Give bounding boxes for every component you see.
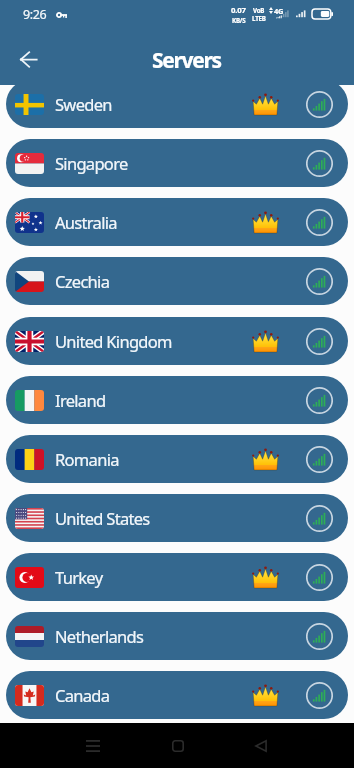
button[interactable]: Australia <box>6 198 348 246</box>
staticText: VoB <box>253 6 265 14</box>
staticText: KB/S <box>232 16 246 24</box>
staticText: 9:26 <box>23 6 47 23</box>
button[interactable]: Recent apps <box>50 723 135 768</box>
staticText: Servers <box>152 46 221 75</box>
staticText: LTEB <box>252 14 266 22</box>
button[interactable]: Netherlands <box>6 612 348 660</box>
staticText: Ireland <box>55 389 106 411</box>
button[interactable]: Sweden <box>6 85 348 128</box>
staticText: Netherlands <box>55 625 144 647</box>
button[interactable]: Back <box>10 41 46 77</box>
staticText: Australia <box>55 211 117 233</box>
staticText: Canada <box>55 684 110 706</box>
button[interactable]: Ireland <box>6 376 348 424</box>
button[interactable]: Romania <box>6 435 348 483</box>
button[interactable]: Czechia <box>6 257 348 305</box>
button[interactable]: Turkey <box>6 553 348 601</box>
staticText: Turkey <box>55 566 103 588</box>
staticText: 4G <box>274 6 284 16</box>
button[interactable]: United States <box>6 494 348 542</box>
staticText: Czechia <box>55 270 110 292</box>
staticText: United States <box>55 507 150 529</box>
staticText: 0.07 <box>231 5 246 16</box>
staticText: Singapore <box>55 152 128 174</box>
staticText: Romania <box>55 448 119 470</box>
button[interactable]: Home <box>135 723 220 768</box>
button[interactable]: Singapore <box>6 139 348 187</box>
button[interactable]: United Kingdom <box>6 317 348 365</box>
staticText: United Kingdom <box>55 330 172 352</box>
button[interactable]: Canada <box>6 671 348 719</box>
button[interactable]: Back <box>218 723 303 768</box>
staticText: Sweden <box>55 93 112 115</box>
